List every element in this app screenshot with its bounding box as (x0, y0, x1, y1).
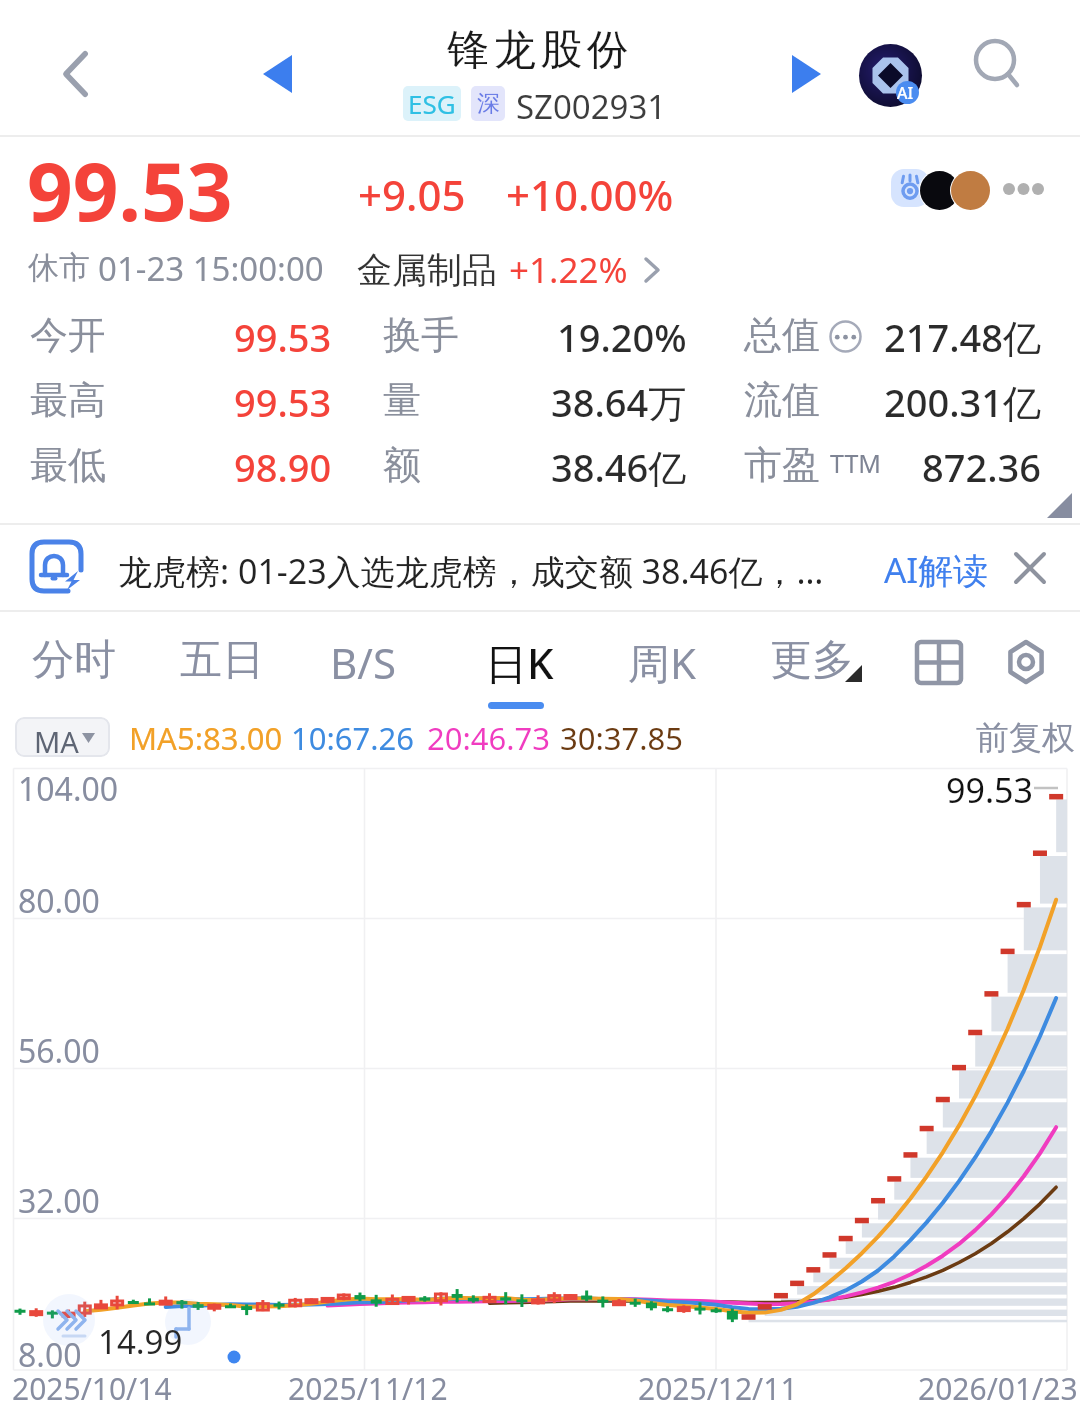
staticText: 日K (485, 634, 554, 691)
staticText: 8.00 (18, 1333, 82, 1377)
staticText: 龙虎榜: 01-23入选龙虎榜，成交额 38.46亿，… (118, 548, 824, 594)
staticText: 99.53 (27, 135, 233, 244)
staticText: 总值 (744, 311, 820, 359)
staticText: 30:37.85 (560, 717, 684, 759)
staticText: 99.53 (234, 376, 332, 428)
staticText: 更多 (770, 634, 854, 687)
staticText: 分时 (32, 634, 116, 687)
button[interactable]: Back (40, 38, 112, 110)
staticText: 额 (383, 441, 421, 489)
staticText: 最高 (30, 376, 106, 424)
staticText: 2026/01/23 (918, 1368, 1078, 1409)
staticText: 换手 (383, 311, 459, 359)
button[interactable]: Next stock (772, 40, 840, 108)
staticText: 深 (477, 89, 500, 118)
staticText: 休市 (28, 248, 90, 287)
staticText: 锋龙股份 (445, 24, 631, 77)
staticText: 流值 (744, 376, 820, 424)
staticText: AI解读 (884, 546, 989, 594)
staticText: 98.90 (234, 441, 332, 493)
staticText: 80.00 (18, 879, 100, 923)
staticText: 20:46.73 (427, 717, 551, 759)
staticText: MA (34, 722, 79, 757)
button[interactable]: MA (15, 717, 110, 757)
staticText: +10.00% (506, 166, 674, 223)
button[interactable]: 周K (612, 624, 712, 701)
button[interactable]: 金属制品 (357, 244, 661, 296)
staticText: 最低 (30, 441, 106, 489)
staticText: 38.46亿 (551, 441, 687, 493)
staticText: TTM (830, 446, 881, 480)
button[interactable]: B/S (314, 624, 412, 701)
staticText: 市盈 (744, 441, 820, 489)
staticText: 200.31亿 (884, 376, 1042, 428)
staticText: ESG (408, 86, 456, 121)
staticText: 量 (383, 376, 421, 424)
button[interactable]: Search (973, 40, 1029, 96)
staticText: MA5:83.00 (129, 717, 283, 759)
staticText: 872.36 (922, 441, 1042, 493)
button[interactable]: 更多 (754, 624, 870, 697)
staticText: SZ002931 (516, 84, 667, 129)
button[interactable]: 日K (469, 624, 570, 701)
staticText: 2025/11/12 (288, 1368, 448, 1409)
staticText: 前复权 (976, 717, 1075, 759)
button[interactable]: Close (1004, 542, 1056, 594)
staticText: 38.64万 (551, 376, 687, 428)
button[interactable]: 五日 (164, 624, 280, 697)
staticText: 14.99 (98, 1319, 183, 1364)
button[interactable]: Expand quote details (1020, 470, 1080, 520)
staticText: 2025/10/14 (12, 1368, 172, 1409)
staticText: 01-23 15:00:00 (98, 246, 324, 291)
staticText: 99.53 (234, 311, 332, 363)
staticText: 217.48亿 (884, 311, 1042, 363)
staticText: 金属制品 (357, 248, 497, 292)
staticText: 99.53 (946, 767, 1033, 813)
staticText: 10:67.26 (291, 717, 415, 759)
button[interactable]: 分时 (16, 624, 132, 697)
staticText: B/S (330, 634, 396, 691)
staticText: 104.00 (18, 767, 119, 811)
button[interactable]: Community avatars (885, 165, 1045, 217)
staticText: 五日 (180, 634, 264, 687)
button[interactable]: Previous stock (243, 40, 311, 108)
staticText: 56.00 (18, 1029, 100, 1073)
button[interactable]: AI assistant (852, 37, 929, 114)
button[interactable]: Grid layout (908, 631, 970, 693)
staticText: 19.20% (557, 311, 687, 363)
staticText: 周K (628, 634, 696, 691)
button[interactable]: Chart settings (995, 631, 1057, 693)
staticText: 2025/12/11 (638, 1368, 798, 1409)
button[interactable]: 龙虎榜: 01-23入选龙虎榜，成交额 38.46亿，… (0, 524, 1080, 610)
staticText: 32.00 (18, 1179, 100, 1223)
staticText: 今开 (30, 311, 106, 359)
staticText: AI (897, 82, 914, 104)
button[interactable]: AI解读 (874, 528, 999, 612)
staticText: +9.05 (358, 166, 466, 223)
staticText: +1.22% (509, 246, 628, 294)
